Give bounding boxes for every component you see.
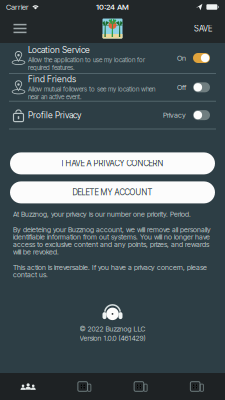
button[interactable]: Profile Privacy	[0, 102, 225, 129]
staticText: SAVE	[194, 24, 212, 33]
staticText: Allow mutual followers to see my locatio…	[28, 85, 155, 101]
button[interactable]: More	[169, 373, 225, 400]
staticText: Privacy	[163, 111, 186, 120]
button[interactable]: Events	[112, 373, 169, 400]
staticText: Version 1.0.0 (461429)	[79, 335, 145, 342]
button[interactable]: Find Friends	[0, 74, 225, 102]
button[interactable]: Friends	[0, 373, 56, 400]
button[interactable]: News	[56, 373, 112, 400]
button[interactable]: SAVE	[186, 14, 220, 43]
staticText: This action is irreversable. If you have…	[13, 264, 207, 278]
staticText: Profile Privacy	[28, 110, 81, 120]
staticText: Location Service	[28, 44, 90, 55]
button[interactable]: Location Service	[0, 43, 225, 74]
button[interactable]: Menu	[5, 14, 35, 43]
staticText: On	[177, 54, 186, 62]
staticText: Allow the application to use my location…	[28, 56, 145, 71]
staticText: © 2022 Buzznog LLC	[79, 325, 145, 332]
staticText: I HAVE A PRIVACY CONCERN	[61, 159, 163, 168]
staticText: Find Friends	[28, 74, 76, 84]
staticText: 10:24 AM	[96, 2, 129, 12]
staticText: By deleteing your Buzznog account, we wi…	[13, 226, 211, 256]
staticText: Carrier	[6, 2, 29, 12]
staticText: DELETE MY ACCOUNT	[72, 188, 152, 197]
staticText: Off	[177, 83, 186, 92]
staticText: At Buzznog, your privacy is our number o…	[13, 210, 191, 218]
button[interactable]: I HAVE A PRIVACY CONCERN	[10, 152, 215, 174]
button[interactable]: DELETE MY ACCOUNT	[10, 181, 215, 203]
